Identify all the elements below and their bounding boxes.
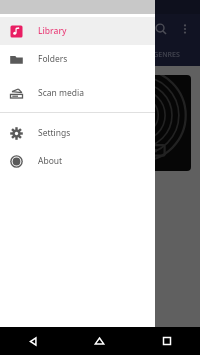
button[interactable] [103,75,191,171]
button[interactable]: Recents [133,327,200,355]
button[interactable]: Search [148,16,174,42]
button[interactable]: Library [0,17,155,45]
button[interactable]: Settings [0,119,155,147]
button[interactable]: Home [66,327,133,355]
button[interactable]: Scan media [0,79,155,107]
button[interactable]: More options [174,18,196,40]
staticText: GENRES [153,50,180,60]
staticText: Scan media [38,87,84,99]
button[interactable]: ALBUMS [0,44,66,66]
button[interactable] [9,75,97,171]
staticText: Folders [38,53,68,65]
button[interactable]: Folders [0,45,155,73]
button[interactable]: About [0,147,155,175]
button[interactable]: ARTISTS [66,44,133,66]
button[interactable]: GENRES [133,44,200,66]
staticText: About [38,155,63,167]
staticText: Library [38,25,67,37]
button[interactable]: Back [0,327,66,355]
staticText: Settings [38,127,71,139]
staticText: ALBUMS [19,50,48,60]
